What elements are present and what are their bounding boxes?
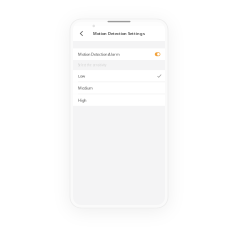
staticText: Motion Detection Settings: [93, 31, 145, 36]
staticText: Medium: [78, 85, 93, 91]
staticText: Motion Detection Alarm: [78, 52, 120, 57]
button[interactable]: High: [73, 94, 165, 106]
button[interactable]: Medium: [73, 82, 165, 94]
staticText: High: [78, 97, 86, 103]
staticText: Select the sensitivity: [78, 63, 106, 67]
button[interactable]: Low: [73, 70, 165, 82]
button[interactable]: Motion Detection Alarm: [155, 52, 160, 56]
staticText: Low: [78, 73, 85, 79]
button[interactable]: Back: [76, 27, 86, 40]
